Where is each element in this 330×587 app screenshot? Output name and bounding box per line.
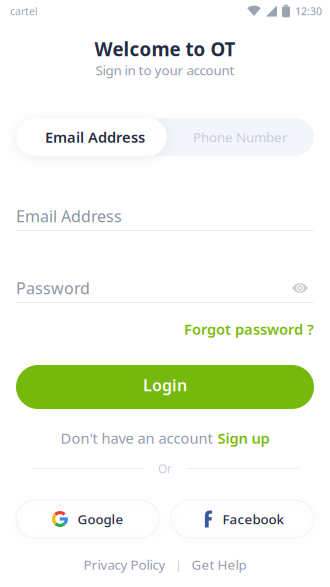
button[interactable]: Phone Number [167,118,314,156]
staticText: Phone Number [193,128,288,146]
staticText: Facebook [222,510,283,528]
button[interactable]: Get Help [191,556,246,573]
staticText: Password [16,277,90,299]
staticText: Email Address [45,127,145,147]
staticText: cartel [10,4,38,18]
button[interactable]: Google [16,500,159,538]
button[interactable]: Email Address [16,118,167,156]
button[interactable]: Sign up [217,428,269,448]
button[interactable]: Login [16,365,314,409]
staticText: Email Address [16,205,122,227]
staticText: Sign in to your account [95,61,234,79]
staticText: Get Help [191,556,246,573]
staticText: | [175,557,181,572]
staticText: Welcome to OT [94,37,235,61]
staticText: Login [143,374,187,396]
staticText: Google [77,510,123,528]
staticText: Don't have an account [60,428,212,448]
staticText: Forgot password ? [184,319,314,339]
button[interactable]: Forgot password ? [184,319,314,339]
staticText: Or [158,460,172,476]
staticText: Sign up [217,428,269,448]
button[interactable]: Show password [290,280,314,295]
button[interactable]: Facebook [171,500,314,538]
staticText: 12:30 [295,4,322,18]
staticText: Privacy Policy [83,556,165,573]
button[interactable]: Privacy Policy [83,556,165,573]
